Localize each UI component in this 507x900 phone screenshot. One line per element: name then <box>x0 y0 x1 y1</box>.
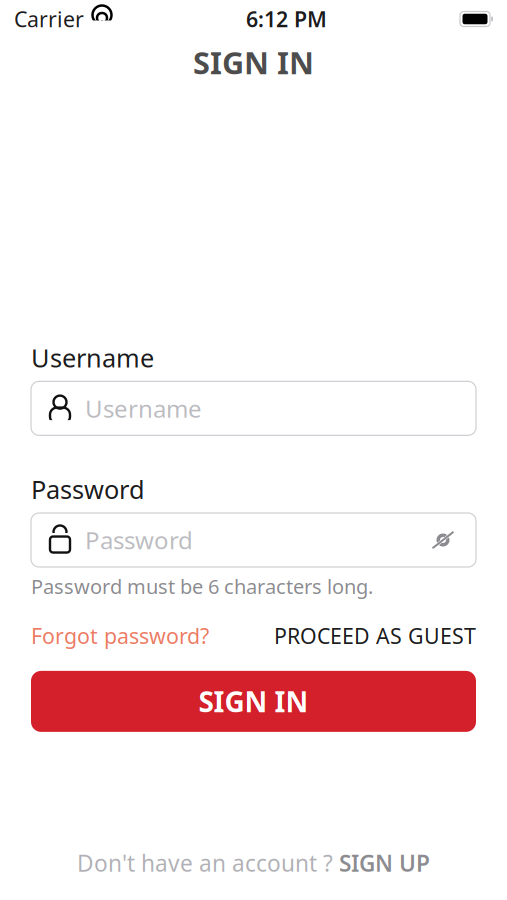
staticText: 6:12 PM <box>246 5 327 33</box>
button[interactable]: Forgot password? <box>31 622 209 650</box>
staticText: Password must be 6 characters long. <box>31 573 373 600</box>
staticText: Username <box>85 392 202 424</box>
staticText: Carrier <box>14 5 84 33</box>
staticText: Password <box>31 472 145 506</box>
staticText: PROCEED AS GUEST <box>274 622 476 650</box>
staticText: Don't have an account ? <box>77 848 339 878</box>
button[interactable]: Don't have an account ? <box>77 848 430 878</box>
staticText: Password <box>85 524 193 556</box>
button[interactable]: SIGN IN <box>31 671 476 732</box>
staticText: SIGN IN <box>198 683 308 720</box>
staticText: Forgot password? <box>31 622 209 650</box>
staticText: SIGN UP <box>339 848 430 878</box>
button[interactable]: Show password <box>426 525 476 555</box>
staticText: Username <box>31 341 154 374</box>
button[interactable]: PROCEED AS GUEST <box>274 622 476 650</box>
staticText: SIGN IN <box>193 42 314 83</box>
